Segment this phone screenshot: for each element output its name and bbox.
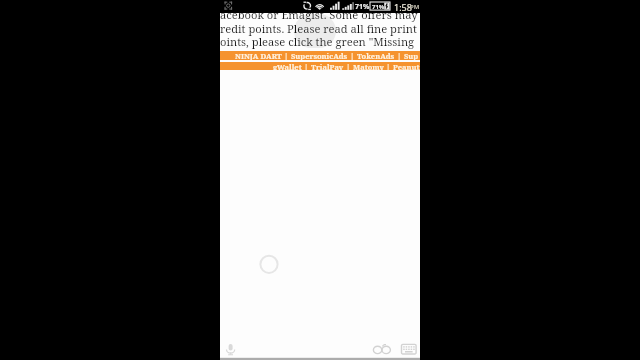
staticText: | xyxy=(302,62,311,70)
staticText: oints, please click the green "Missing xyxy=(220,34,415,49)
button[interactable]: Voice search xyxy=(225,343,236,356)
button[interactable]: TrialPay xyxy=(311,62,344,70)
button[interactable]: Keyboard xyxy=(401,344,417,355)
staticText: | xyxy=(282,51,291,60)
button[interactable]: Peanut xyxy=(393,62,420,70)
button[interactable]: Matomy xyxy=(353,62,384,70)
staticText: | xyxy=(384,62,393,70)
staticText: | xyxy=(344,62,353,70)
staticText: 71% xyxy=(372,3,385,11)
staticText: TrialPay xyxy=(311,62,344,70)
staticText: acebook or Emagist. Some offers may xyxy=(220,7,418,22)
button[interactable]: gWallet xyxy=(273,62,302,70)
button[interactable]: Sup xyxy=(404,51,419,60)
staticText: Peanut xyxy=(393,62,420,70)
staticText: gWallet xyxy=(273,62,302,70)
staticText: | xyxy=(348,51,357,60)
staticText: | xyxy=(395,51,404,60)
button[interactable]: TokenAds xyxy=(357,51,395,60)
staticText: Sup xyxy=(404,51,419,60)
button[interactable]: NINJA DART xyxy=(235,51,282,60)
staticText: PM xyxy=(410,3,420,11)
staticText: NINJA DART xyxy=(235,51,282,60)
staticText: TokenAds xyxy=(357,51,395,60)
button[interactable]: Reader mode xyxy=(373,344,392,355)
staticText: 1:58 xyxy=(394,1,412,13)
staticText: SupersonicAds xyxy=(291,51,348,60)
staticText: 71% xyxy=(355,2,370,12)
staticText: redit points. Please read all fine print xyxy=(220,21,417,36)
staticText: Matomy xyxy=(353,62,384,70)
button[interactable]: SupersonicAds xyxy=(291,51,348,60)
